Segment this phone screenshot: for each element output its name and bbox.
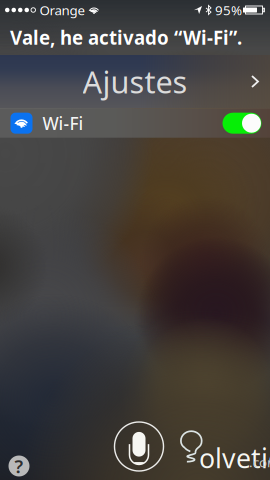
- button[interactable]: Wi-Fi: [0, 109, 270, 138]
- button[interactable]: Siri microphone: [107, 415, 163, 471]
- staticText: olvetic: [199, 440, 270, 476]
- staticText: .com: [249, 453, 270, 471]
- staticText: ?: [14, 454, 23, 478]
- staticText: Wi-Fi: [42, 112, 83, 135]
- staticText: 95%: [215, 1, 242, 19]
- button[interactable]: Ajustes: [0, 55, 270, 108]
- staticText: Ajustes: [82, 61, 187, 102]
- staticText: Orange: [39, 1, 85, 19]
- staticText: Vale, he activado “Wi-Fi”.: [10, 25, 242, 50]
- button[interactable]: Help: [5, 452, 32, 479]
